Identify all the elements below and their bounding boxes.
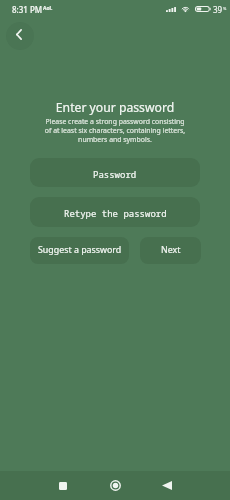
staticText: Enter your password — [0, 99, 230, 116]
button[interactable]: Retype the password — [30, 197, 200, 227]
button[interactable]: Suggest a password — [30, 237, 129, 264]
button[interactable]: Recents — [45, 471, 81, 500]
button[interactable]: Password — [30, 158, 200, 187]
staticText: Password — [93, 168, 137, 180]
staticText: Suggest a password — [38, 244, 122, 256]
staticText: 39 — [213, 4, 223, 15]
staticText: 8:31 PM — [12, 4, 43, 15]
button[interactable]: Next — [140, 237, 201, 264]
staticText: % — [223, 6, 227, 11]
staticText: Aol. — [43, 5, 53, 12]
button[interactable]: Home — [97, 471, 133, 500]
staticText: Retype the password — [64, 207, 167, 219]
staticText: Next — [161, 244, 181, 256]
button[interactable]: Back — [149, 471, 185, 500]
button[interactable]: Back — [6, 22, 34, 50]
staticText: Please create a strong password consisti… — [0, 117, 230, 144]
